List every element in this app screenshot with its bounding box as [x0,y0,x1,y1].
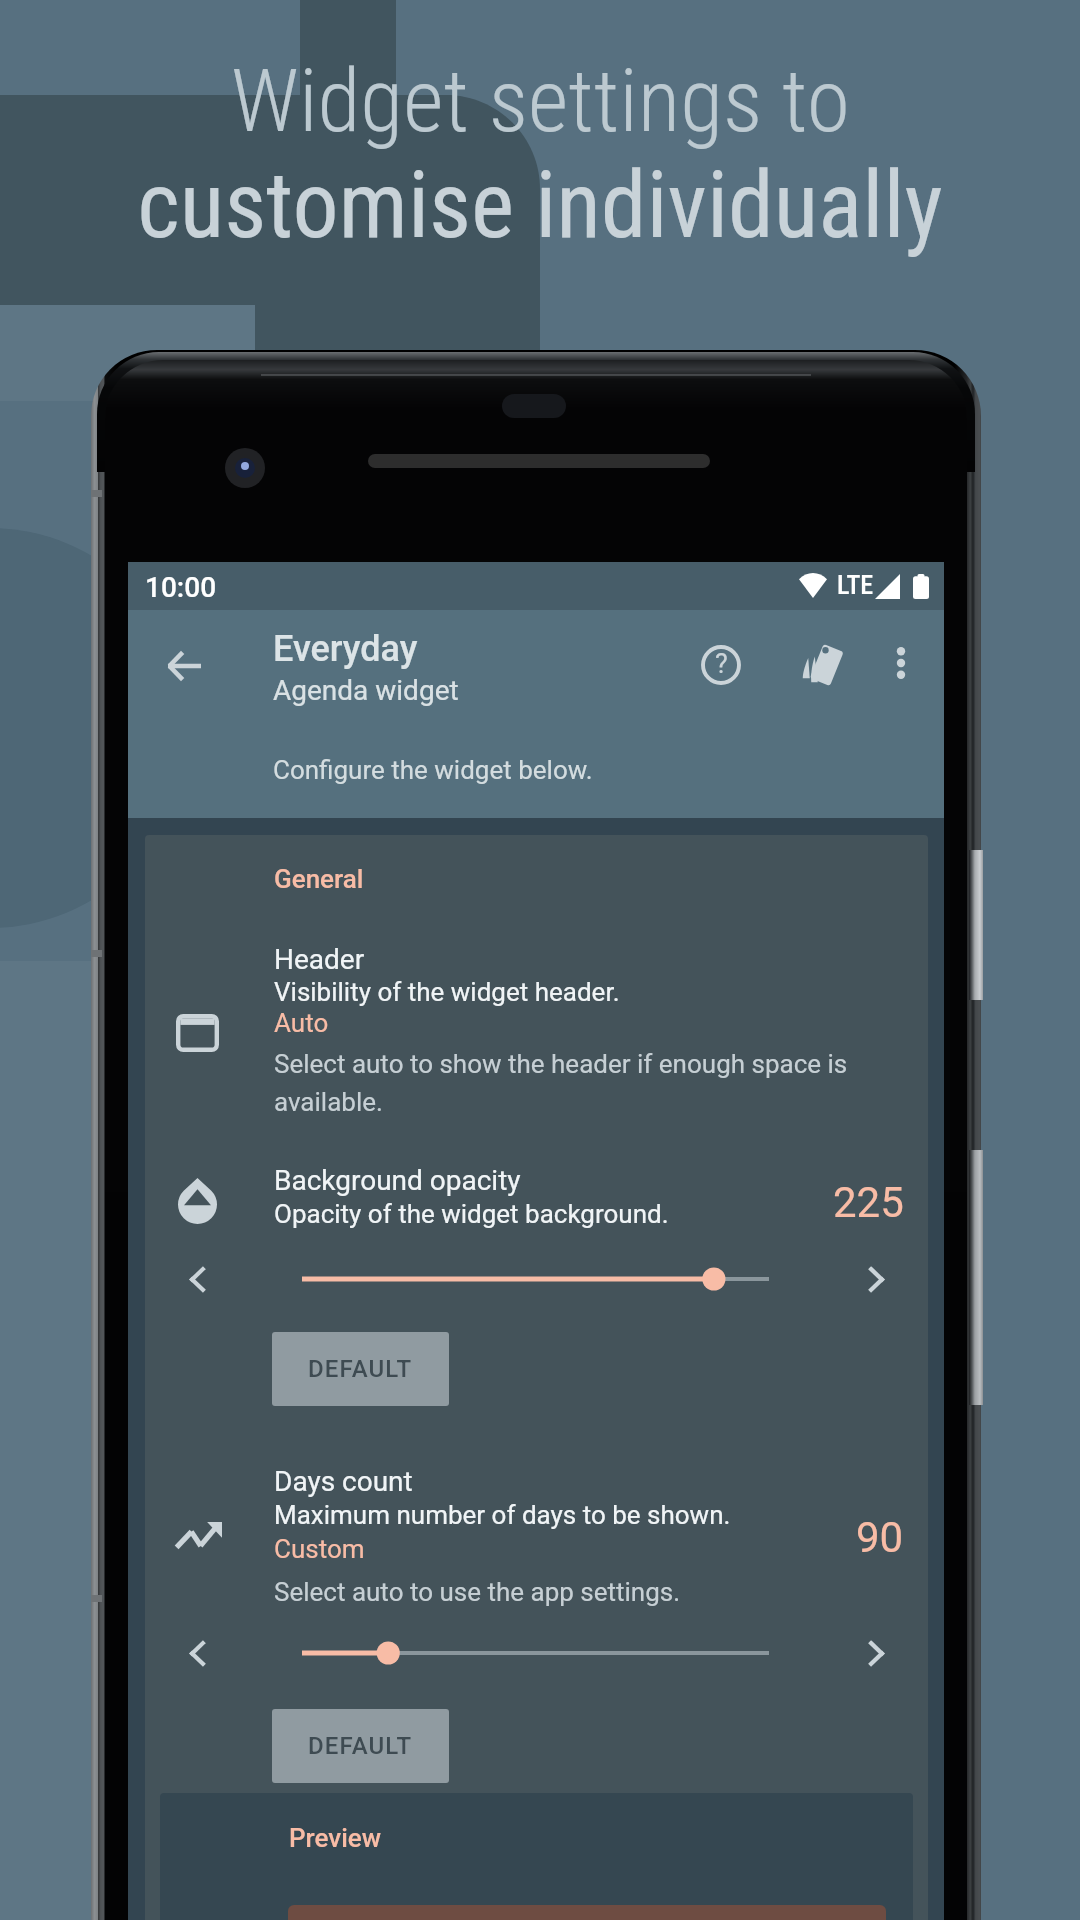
button[interactable]: Increase [832,1609,920,1697]
button[interactable]: Increase [832,1235,920,1323]
staticText: ? [715,648,728,680]
staticText: General [274,864,364,894]
staticText: 10:00 [145,571,217,604]
staticText: Select auto to use the app settings. [274,1577,681,1607]
button[interactable]: Help [678,622,764,708]
staticText: DEFAULT [308,1732,413,1760]
button[interactable] [274,944,934,1122]
button[interactable]: Change theme [777,622,863,708]
staticText: Preview [289,1823,382,1853]
button[interactable]: DEFAULT [272,1332,449,1406]
button[interactable]: More options [861,623,941,703]
staticText: Everyday [273,628,418,670]
staticText: Background opacity [274,1164,521,1197]
staticText: Custom [274,1534,365,1564]
button[interactable]: DEFAULT [272,1709,449,1783]
staticText: Select auto to show the header if enough… [274,1049,848,1079]
staticText: Agenda widget [273,674,459,707]
staticText: Widget settings to [231,49,850,152]
button[interactable]: Decrease [153,1235,241,1323]
staticText: customise individually [137,152,943,260]
staticText: Configure the widget below. [273,755,593,785]
staticText: Header [274,943,365,976]
staticText: LTE [837,570,874,600]
staticText: DEFAULT [308,1355,413,1383]
staticText: Auto [274,1008,329,1038]
button[interactable]: Back [141,623,227,709]
staticText: Opacity of the widget background. [274,1199,669,1229]
staticText: 90 [856,1513,904,1562]
staticText: Visibility of the widget header. [274,977,620,1007]
button[interactable]: Decrease [153,1609,241,1697]
button[interactable] [274,1470,934,1610]
staticText: available. [274,1087,383,1117]
staticText: Maximum number of days to be shown. [274,1500,731,1530]
staticText: Days count [274,1465,413,1498]
staticText: 225 [833,1178,904,1227]
button[interactable] [274,1162,934,1242]
